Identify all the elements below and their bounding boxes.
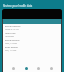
staticText: Blood pressure [5,25,21,28]
button[interactable]: Heart rate [5,32,61,39]
staticText: Sun, 11 May [5,49,17,52]
staticText: Mon, 12 May [5,42,18,45]
staticText: Heart rate [5,32,16,35]
button[interactable]: Review your health data [0,0,64,10]
button[interactable]: Tab 0 [10,66,16,70]
staticText: Body weight [5,46,18,49]
button[interactable]: Blood glucose [5,39,61,46]
button[interactable]: Blood pressure [5,25,61,32]
staticText: Blood glucose [5,39,20,42]
staticText: Yesterday [5,35,15,38]
button[interactable]: Body weight [5,46,61,53]
button[interactable]: Tab 2 [35,66,41,70]
button[interactable]: Tab 3 [48,66,54,70]
button[interactable]: Tab 1 [23,66,29,70]
staticText: Today 9:14 AM [5,28,19,31]
staticText: Review your health data [3,4,33,7]
